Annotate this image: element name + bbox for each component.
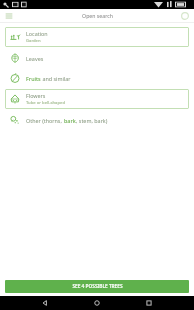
button[interactable]: Flowers: [5, 89, 189, 109]
staticText: Tube or bell-shaped: [26, 100, 65, 106]
button[interactable]: Back: [38, 296, 52, 310]
button[interactable]: Leaves: [0, 48, 194, 68]
button[interactable]: Help: [179, 10, 191, 22]
button[interactable]: Recent apps: [142, 296, 156, 310]
button[interactable]: Fruits: [0, 68, 194, 88]
staticText: bark: [64, 117, 76, 124]
staticText: Other (thorns,: [26, 117, 64, 124]
staticText: Location: [26, 30, 48, 37]
staticText: Garden: [26, 38, 41, 44]
button[interactable]: Other (thorns,: [0, 110, 194, 130]
staticText: Leaves: [26, 55, 44, 62]
staticText: Fruits: [26, 75, 41, 82]
button[interactable]: Location: [5, 27, 189, 47]
button[interactable]: Home: [90, 296, 104, 310]
staticText: Flowers: [26, 92, 46, 99]
button[interactable]: SEE 4 POSSIBLE TREES: [5, 280, 189, 293]
button[interactable]: Open navigation menu: [3, 10, 15, 22]
staticText: , stem, bark): [76, 117, 108, 124]
staticText: and similar: [41, 75, 71, 82]
staticText: SEE 4 POSSIBLE TREES: [72, 283, 123, 290]
staticText: Open search: [82, 12, 113, 19]
